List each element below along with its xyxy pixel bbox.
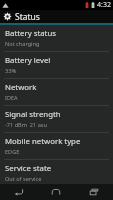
staticText: IDEA (5, 94, 18, 102)
button[interactable]: Service state (0, 160, 113, 184)
staticText: Out of service (5, 175, 42, 181)
staticText: Battery level (5, 55, 51, 66)
button[interactable]: Home (37, 184, 75, 200)
staticText: Battery status (5, 28, 56, 39)
button[interactable]: Battery status (0, 25, 113, 51)
staticText: Service state (5, 163, 52, 174)
button[interactable]: Network (0, 79, 113, 105)
button[interactable]: Mobile network type (0, 133, 113, 159)
staticText: -71 dBm 21 asu (5, 121, 47, 129)
staticText: Status (15, 11, 40, 23)
button[interactable]: Signal strength (0, 106, 113, 132)
staticText: 33% (5, 67, 17, 75)
button[interactable]: Battery level (0, 52, 113, 78)
staticText: 4:32 (97, 0, 111, 10)
staticText: Network (5, 82, 37, 93)
button[interactable]: Back (0, 184, 37, 200)
staticText: Mobile network type (5, 136, 81, 147)
other: Settings (3, 12, 12, 21)
staticText: Signal strength (5, 109, 61, 120)
button[interactable]: Settings (0, 10, 113, 23)
staticText: EDGE (5, 148, 20, 156)
staticText: Not charging (5, 40, 40, 48)
button[interactable]: Recents (75, 184, 113, 200)
